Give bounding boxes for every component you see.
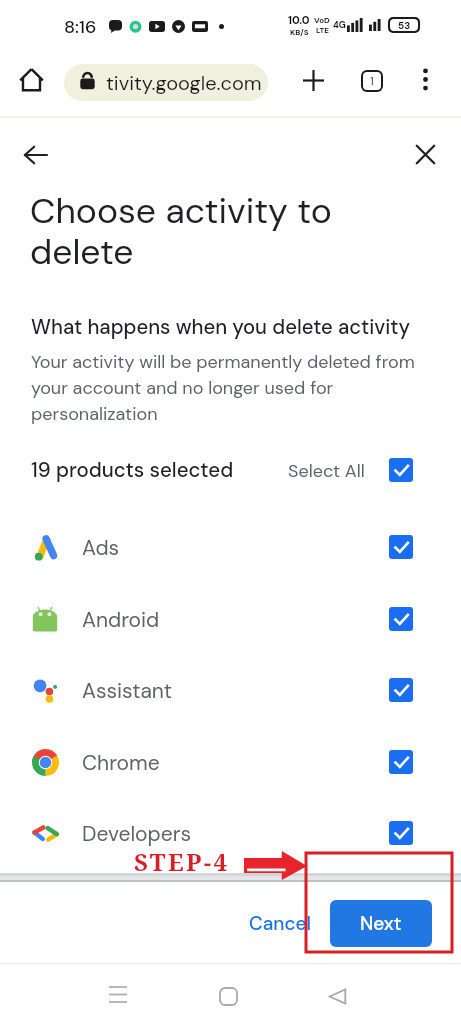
button[interactable]: Ads (31, 513, 413, 581)
button[interactable]: Selected (389, 607, 413, 631)
staticText: 19 products selected (31, 457, 234, 484)
button[interactable]: Selected (389, 821, 413, 845)
staticText: STEP-4 (134, 845, 230, 878)
staticText: Ads (82, 534, 120, 561)
button[interactable]: Selected (389, 750, 413, 774)
staticText: Chrome (82, 749, 160, 776)
button[interactable]: New tab (294, 61, 332, 99)
button[interactable]: Back (309, 968, 365, 1024)
button[interactable]: Selected (389, 678, 413, 702)
staticText: 53 (398, 19, 411, 31)
staticText: 8:16 (64, 15, 97, 38)
button[interactable]: Home (10, 58, 52, 100)
button[interactable]: Cancel (243, 906, 318, 941)
button[interactable]: Assistant (31, 656, 413, 724)
button[interactable]: Developers (31, 799, 413, 867)
button[interactable]: Android (31, 585, 413, 653)
button[interactable]: Chrome (31, 728, 413, 796)
staticText: tivity.google.com (106, 70, 262, 96)
button[interactable]: Home (200, 968, 256, 1024)
staticText: Android (82, 606, 160, 633)
staticText: LTE (316, 25, 329, 35)
button[interactable]: Close (404, 133, 447, 176)
staticText: Your activity will be permanently delete… (31, 350, 426, 425)
button[interactable]: Selected (389, 535, 413, 559)
button[interactable]: tivity.google.com (64, 64, 268, 101)
button[interactable]: Back (14, 133, 57, 176)
staticText: Select All (288, 459, 365, 482)
button[interactable]: Selected (389, 458, 413, 482)
staticText: KB/S (290, 27, 309, 37)
staticText: 4G (333, 19, 346, 31)
staticText: Cancel (249, 911, 312, 936)
staticText: What happens when you delete activity (31, 314, 411, 340)
button[interactable]: Tabs (353, 62, 390, 99)
staticText: Developers (82, 820, 191, 847)
staticText: Choose activity to delete (30, 188, 370, 275)
button[interactable]: More options (407, 61, 444, 98)
staticText: Next (360, 911, 402, 936)
staticText: VoD (314, 15, 330, 25)
staticText: 10.0 (288, 13, 310, 27)
staticText: Assistant (82, 677, 173, 704)
button[interactable]: Recent apps (90, 966, 146, 1022)
button[interactable]: Next (330, 900, 432, 947)
staticText: 1 (370, 73, 374, 89)
